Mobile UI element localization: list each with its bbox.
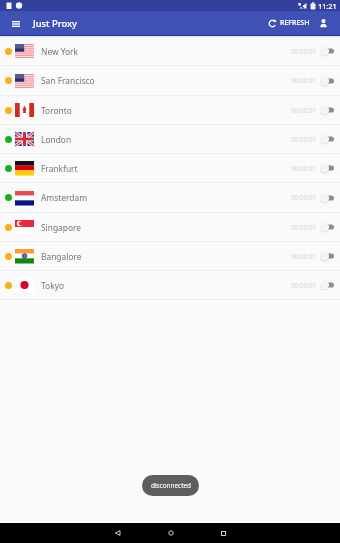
button[interactable]: Toronto [0, 96, 340, 124]
button[interactable]: Frankfurt [0, 154, 340, 182]
staticText: San Francisco [41, 75, 95, 86]
button[interactable]: London [0, 125, 340, 153]
staticText: 00:00:01 [291, 106, 317, 115]
button[interactable]: Amsterdam [0, 183, 340, 212]
staticText: 00:00:01 [291, 193, 317, 202]
staticText: Just Proxy [33, 17, 77, 30]
button[interactable]: Home [144, 523, 197, 543]
staticText: 00:00:01 [291, 164, 317, 173]
button[interactable]: Tokyo [0, 271, 340, 299]
staticText: Singapore [41, 222, 82, 233]
staticText: 11:21 [318, 1, 337, 11]
staticText: London [41, 134, 72, 145]
button[interactable]: disconnected [142, 475, 199, 496]
staticText: 00:00:01 [291, 281, 317, 290]
staticText: 00:00:01 [291, 135, 317, 144]
button[interactable]: New York [0, 37, 340, 65]
staticText: Amsterdam [41, 192, 87, 203]
staticText: Toronto [41, 105, 72, 116]
staticText: 00:00:01 [291, 76, 317, 85]
button[interactable]: San Francisco [0, 66, 340, 95]
staticText: disconnected [151, 481, 191, 490]
button[interactable]: Recent apps [197, 523, 250, 543]
button[interactable]: Menu [7, 15, 24, 32]
staticText: 00:00:01 [291, 252, 317, 261]
staticText: Frankfurt [41, 163, 78, 174]
button[interactable]: REFRESH [265, 11, 313, 35]
staticText: Tokyo [41, 280, 64, 291]
staticText: 00:00:01 [291, 47, 317, 56]
button[interactable]: Account [313, 13, 334, 34]
button[interactable]: Back [91, 523, 144, 543]
staticText: New York [41, 46, 79, 57]
button[interactable]: Singapore [0, 213, 340, 241]
staticText: Bangalore [41, 251, 82, 262]
button[interactable]: Bangalore [0, 242, 340, 270]
staticText: 00:00:01 [291, 223, 317, 232]
staticText: REFRESH [280, 18, 310, 28]
